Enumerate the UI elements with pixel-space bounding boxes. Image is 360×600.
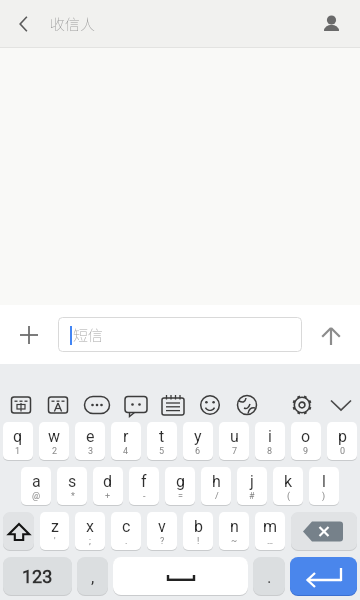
staticText: h — [212, 472, 221, 491]
staticText: . — [267, 567, 272, 587]
button[interactable] — [191, 388, 228, 422]
staticText: m — [263, 517, 278, 536]
staticText: l — [322, 472, 326, 491]
staticText: f — [141, 472, 147, 491]
button[interactable] — [290, 557, 357, 596]
button[interactable] — [302, 305, 360, 364]
staticText: , — [91, 567, 95, 587]
button[interactable]: p — [327, 422, 357, 461]
staticText: w — [48, 427, 61, 446]
button[interactable]: 123 — [3, 557, 72, 596]
staticText: 5 — [159, 446, 165, 457]
staticText: - — [143, 491, 146, 502]
button[interactable]: n — [219, 512, 249, 551]
button[interactable]: l — [309, 467, 339, 506]
staticText: 123 — [22, 566, 53, 587]
button[interactable] — [291, 512, 357, 551]
staticText: g — [176, 472, 185, 491]
staticText: t — [159, 427, 165, 446]
button[interactable]: s — [57, 467, 87, 506]
button[interactable]: z — [40, 512, 69, 551]
button[interactable]: e — [75, 422, 105, 461]
staticText: 6 — [195, 446, 201, 457]
button[interactable]: . — [253, 557, 285, 596]
button[interactable]: y — [183, 422, 213, 461]
staticText: … — [267, 536, 274, 547]
button[interactable]: j — [237, 467, 267, 506]
button[interactable] — [117, 388, 155, 422]
button[interactable]: x — [75, 512, 105, 551]
button[interactable]: o — [291, 422, 321, 461]
button[interactable]: a — [21, 467, 51, 506]
staticText: 3 — [88, 446, 94, 457]
button[interactable]: k — [273, 467, 303, 506]
staticText: j — [250, 472, 254, 491]
staticText: ; — [89, 536, 91, 547]
staticText: e — [86, 427, 95, 446]
button[interactable]: f — [129, 467, 159, 506]
button[interactable] — [322, 388, 360, 422]
staticText: 1 — [15, 446, 21, 457]
staticText: ? — [160, 536, 165, 547]
staticText: p — [338, 427, 347, 446]
button[interactable]: d — [93, 467, 123, 506]
button[interactable]: 短信 — [58, 317, 302, 352]
button[interactable]: q — [3, 422, 33, 461]
button[interactable]: u — [219, 422, 249, 461]
button[interactable]: w — [39, 422, 69, 461]
staticText: d — [103, 472, 113, 491]
staticText: a — [32, 472, 41, 491]
button[interactable]: v — [147, 512, 177, 551]
staticText: v — [158, 517, 166, 536]
staticText: n — [230, 517, 239, 536]
staticText: o — [301, 427, 311, 446]
button[interactable]: h — [201, 467, 231, 506]
staticText: 短信 — [73, 324, 104, 346]
staticText: ' — [54, 536, 56, 547]
button[interactable]: c — [111, 512, 141, 551]
button[interactable] — [304, 0, 360, 48]
staticText: 收信人 — [50, 13, 96, 35]
staticText: # — [249, 491, 255, 502]
button[interactable] — [0, 0, 48, 48]
staticText: k — [284, 472, 293, 491]
button[interactable] — [76, 388, 117, 422]
button[interactable] — [3, 512, 34, 551]
staticText: r — [123, 427, 129, 446]
staticText: ) — [322, 491, 326, 502]
button[interactable]: g — [165, 467, 195, 506]
staticText: c — [122, 517, 131, 536]
staticText: . — [125, 536, 128, 547]
button[interactable] — [228, 388, 265, 422]
staticText: @ — [32, 491, 41, 502]
staticText: 8 — [267, 446, 273, 457]
button[interactable] — [0, 305, 58, 364]
staticText: 2 — [52, 446, 58, 457]
staticText: / — [215, 491, 219, 502]
staticText: 7 — [232, 446, 238, 457]
staticText: ! — [197, 536, 200, 547]
staticText: i — [268, 427, 272, 446]
staticText: q — [13, 427, 23, 446]
button[interactable] — [282, 388, 322, 422]
button[interactable] — [39, 388, 76, 422]
button[interactable]: b — [183, 512, 213, 551]
staticText: z — [51, 517, 59, 536]
button[interactable]: m — [255, 512, 285, 551]
button[interactable] — [113, 557, 248, 596]
staticText: x — [86, 517, 94, 536]
button[interactable]: , — [77, 557, 108, 596]
button[interactable] — [2, 388, 39, 422]
button[interactable]: t — [147, 422, 177, 461]
staticText: 0 — [340, 446, 346, 457]
button[interactable]: i — [255, 422, 285, 461]
button[interactable] — [155, 388, 191, 422]
staticText: y — [194, 427, 202, 446]
staticText: 9 — [303, 446, 309, 457]
staticText: ( — [287, 491, 291, 502]
staticText: 4 — [123, 446, 129, 457]
staticText: = — [178, 491, 183, 502]
staticText: b — [194, 517, 203, 536]
button[interactable]: r — [111, 422, 141, 461]
staticText: + — [105, 491, 111, 502]
